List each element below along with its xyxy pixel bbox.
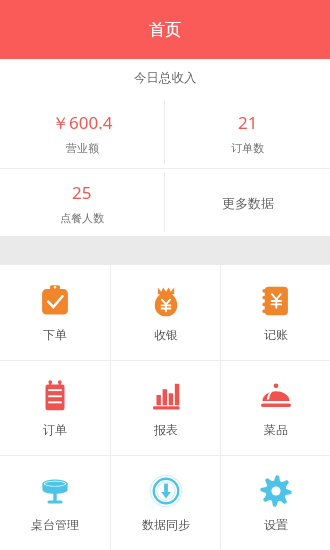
staticText: 下单: [43, 327, 67, 342]
button[interactable]: 25: [0, 169, 164, 236]
button[interactable]: ￥600.4: [0, 97, 164, 168]
staticText: 营业额: [66, 141, 99, 155]
staticText: 桌台管理: [31, 517, 79, 532]
button[interactable]: 订单: [0, 361, 110, 455]
staticText: 首页: [149, 20, 181, 40]
staticText: 点餐人数: [60, 211, 104, 225]
staticText: 21: [238, 111, 258, 134]
staticText: 25: [72, 181, 92, 204]
staticText: 今日总收入: [134, 70, 197, 86]
button[interactable]: 报表: [111, 361, 220, 455]
staticText: 订单: [43, 422, 67, 437]
button[interactable]: 数据同步: [111, 456, 220, 550]
button[interactable]: 设置: [221, 456, 330, 550]
button[interactable]: 记账: [221, 265, 330, 360]
staticText: 菜品: [264, 422, 288, 437]
button[interactable]: 21: [165, 97, 330, 168]
staticText: 订单数: [231, 141, 264, 155]
staticText: ￥600.4: [52, 111, 113, 134]
button[interactable]: 收银: [111, 265, 220, 360]
staticText: 更多数据: [222, 195, 274, 211]
button[interactable]: 菜品: [221, 361, 330, 455]
staticText: 记账: [264, 327, 288, 342]
staticText: 设置: [264, 517, 288, 532]
staticText: 数据同步: [142, 517, 190, 532]
button[interactable]: 下单: [0, 265, 110, 360]
button[interactable]: 更多数据: [165, 169, 330, 236]
staticText: 收银: [154, 327, 178, 342]
staticText: 报表: [154, 422, 178, 437]
button[interactable]: 桌台管理: [0, 456, 110, 550]
